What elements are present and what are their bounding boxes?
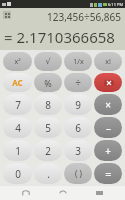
staticText: 123,456÷56,865 [47, 10, 121, 24]
button[interactable]: History [3, 11, 11, 19]
button[interactable]: 1/x [64, 52, 92, 71]
button[interactable]: AC [3, 73, 32, 92]
staticText: 2 [45, 144, 51, 158]
button[interactable]: + [94, 140, 122, 161]
staticText: ( ) [75, 168, 82, 179]
staticText: 6 [75, 121, 81, 135]
button[interactable]: 7 [3, 94, 32, 115]
button[interactable]: 6 [64, 117, 92, 138]
button[interactable]: 0 [3, 163, 32, 184]
staticText: 6:11 PM [108, 2, 124, 7]
staticText: ÷ [75, 76, 81, 90]
staticText: – [106, 121, 111, 135]
staticText: x! [105, 57, 111, 67]
staticText: AC [12, 77, 23, 88]
button[interactable]: 4 [3, 117, 32, 138]
staticText: % [44, 77, 52, 89]
button[interactable]: x² [3, 52, 32, 71]
staticText: 1/x [73, 57, 84, 67]
button[interactable]: x! [94, 52, 122, 71]
button[interactable]: Home [53, 186, 73, 200]
staticText: = [105, 166, 112, 181]
staticText: 3 [75, 144, 81, 158]
staticText: 4 [15, 121, 21, 135]
staticText: 5 [45, 121, 51, 135]
button[interactable]: ( ) [64, 163, 92, 184]
staticText: x² [14, 57, 21, 67]
staticText: + [105, 144, 111, 158]
staticText: 9 [75, 98, 81, 112]
button[interactable]: 2 [34, 140, 62, 161]
button[interactable]: 8 [34, 94, 62, 115]
staticText: . [47, 167, 50, 181]
button[interactable]: Backspace [94, 73, 122, 92]
button[interactable]: 9 [64, 94, 92, 115]
button[interactable]: 5 [34, 117, 62, 138]
button[interactable]: × [94, 94, 122, 115]
button[interactable]: Back [16, 186, 36, 200]
staticText: 8 [45, 98, 51, 112]
staticText: = 2.1710366658 [4, 27, 115, 47]
staticText: √ [45, 57, 51, 66]
staticText: × [105, 98, 111, 112]
button[interactable]: Recents [89, 186, 109, 200]
button[interactable]: . [34, 163, 62, 184]
button[interactable]: – [94, 117, 122, 138]
staticText: 0 [15, 167, 21, 181]
staticText: 1 [15, 144, 21, 158]
staticText: 7 [15, 98, 21, 112]
button[interactable]: % [34, 73, 62, 92]
button[interactable]: √ [34, 52, 62, 71]
button[interactable]: 3 [64, 140, 92, 161]
button[interactable]: = [94, 163, 122, 184]
button[interactable]: ÷ [64, 73, 92, 92]
button[interactable]: 1 [3, 140, 32, 161]
